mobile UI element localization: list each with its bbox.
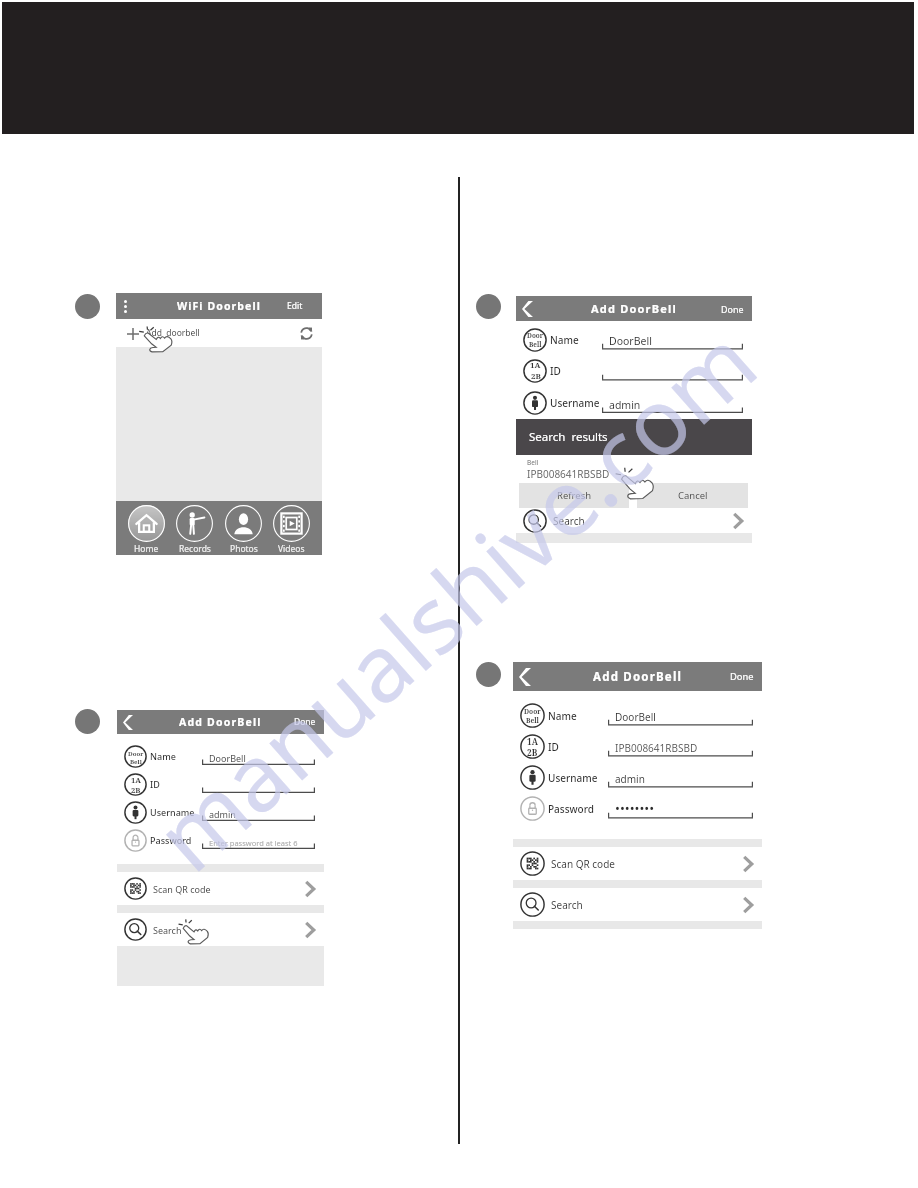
staticText: Bell — [527, 458, 539, 467]
button[interactable]: Bell — [516, 455, 752, 483]
button[interactable]: 1A — [516, 355, 752, 386]
staticText: DoorBell — [615, 710, 656, 724]
staticText: Search — [551, 898, 583, 912]
staticText: 1A — [131, 775, 141, 785]
staticText: ID — [550, 364, 561, 378]
button[interactable]: Username — [516, 386, 752, 419]
button[interactable]: Back — [123, 715, 133, 730]
button[interactable]: Door — [117, 742, 324, 770]
button[interactable]: Username — [117, 798, 324, 826]
staticText: Add DoorBell — [179, 715, 262, 729]
button[interactable]: Done — [721, 303, 752, 315]
staticText: Scan QR code — [551, 857, 615, 871]
button[interactable]: Username — [513, 762, 762, 793]
staticText: Name — [548, 709, 577, 723]
staticText: WiFi Doorbell — [177, 299, 261, 313]
staticText: DoorBell — [209, 752, 246, 764]
button[interactable]: Refresh — [299, 326, 314, 341]
button[interactable]: Edit — [287, 300, 322, 312]
staticText: Add DoorBell — [593, 669, 683, 685]
staticText: Records — [179, 543, 211, 555]
button[interactable]: More options — [124, 300, 127, 313]
staticText: Refresh — [557, 489, 592, 502]
staticText: 2B — [531, 371, 541, 382]
staticText: DoorBell — [609, 334, 652, 348]
button[interactable]: Back — [522, 301, 533, 317]
staticText: Name — [150, 750, 176, 762]
staticText: Edit — [287, 300, 303, 312]
staticText: Door — [527, 331, 544, 340]
staticText: Done — [721, 303, 744, 315]
staticText: Name — [550, 333, 579, 347]
staticText: Bell — [529, 340, 542, 349]
staticText: Door — [128, 749, 144, 757]
button[interactable]: Done — [294, 716, 324, 728]
button[interactable]: Password — [513, 793, 762, 824]
button[interactable]: Add doorbell — [116, 319, 322, 347]
staticText: Photos — [230, 543, 258, 555]
staticText: admin — [209, 808, 236, 820]
button[interactable]: Door — [516, 324, 752, 355]
button[interactable]: Door — [513, 700, 762, 731]
staticText: Cancel — [678, 489, 708, 502]
staticText: IPB008641RBSBD — [527, 467, 610, 481]
button[interactable]: Records — [176, 501, 213, 555]
staticText: Home — [134, 543, 159, 555]
button[interactable]: Videos — [273, 501, 310, 555]
staticText: admin — [615, 772, 645, 786]
button[interactable]: Done — [730, 670, 762, 683]
staticText: ID — [548, 740, 559, 754]
staticText: Add DoorBell — [591, 301, 677, 316]
button[interactable]: More options — [116, 293, 322, 319]
button[interactable]: Cancel — [637, 483, 748, 508]
staticText: IPB008641RBSBD — [615, 741, 698, 755]
staticText: 1A — [530, 360, 541, 371]
button[interactable]: Scan QR code — [513, 847, 762, 880]
button[interactable]: Home — [128, 501, 165, 555]
staticText: Bell — [130, 757, 142, 765]
staticText: Door — [524, 707, 541, 716]
button[interactable]: Refresh — [519, 483, 629, 508]
staticText: Videos — [278, 543, 305, 555]
button[interactable]: Photos — [225, 501, 262, 555]
staticText: 1A — [527, 736, 538, 747]
staticText: Username — [550, 396, 600, 410]
staticText: Done — [294, 716, 316, 728]
button[interactable]: Scan QR code — [117, 872, 324, 905]
staticText: Bell — [526, 716, 539, 725]
staticText: admin — [609, 398, 641, 412]
staticText: Password — [548, 802, 594, 816]
button[interactable]: 1A — [513, 731, 762, 762]
staticText: 2B — [131, 785, 141, 795]
button[interactable]: Search — [117, 913, 324, 946]
button[interactable]: Back — [519, 668, 531, 686]
staticText: Enter password at least 6 — [209, 838, 298, 848]
staticText: 2B — [527, 747, 538, 758]
button[interactable]: Search — [513, 888, 762, 921]
button[interactable]: Password — [117, 826, 324, 854]
button[interactable]: 1A — [117, 770, 324, 798]
staticText: •••••••• — [615, 799, 655, 817]
staticText: Scan QR code — [153, 883, 211, 895]
button[interactable]: Search — [516, 508, 752, 533]
staticText: Search — [153, 924, 182, 936]
staticText: Done — [730, 670, 754, 683]
staticText: Password — [150, 834, 192, 846]
staticText: Add doorbell — [146, 327, 200, 339]
staticText: manualshive.com — [128, 299, 781, 897]
staticText: ID — [150, 778, 160, 790]
staticText: Search — [553, 514, 585, 528]
staticText: Search results — [529, 429, 608, 445]
staticText: Username — [150, 806, 195, 818]
staticText: Username — [548, 771, 598, 785]
